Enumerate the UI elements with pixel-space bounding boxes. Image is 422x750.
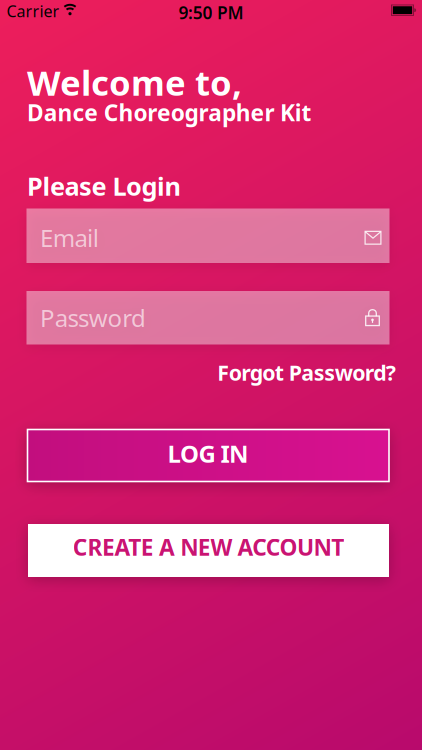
staticText: Forgot Password? (217, 358, 396, 387)
staticText: Email (40, 222, 99, 254)
staticText: LOG IN (167, 438, 249, 469)
button[interactable]: Forgot Password? (217, 358, 396, 387)
button[interactable]: Email (26, 208, 389, 263)
button[interactable]: LOG IN (27, 429, 389, 481)
staticText: Password (40, 302, 146, 334)
staticText: 9:50 PM (178, 1, 244, 24)
button[interactable]: CREATE A NEW ACCOUNT (28, 524, 389, 577)
staticText: CREATE A NEW ACCOUNT (73, 532, 344, 562)
staticText: Welcome to, (27, 59, 242, 105)
staticText: Carrier (6, 0, 59, 22)
button[interactable]: Password (26, 291, 389, 344)
staticText: Dance Choreographer Kit (27, 97, 312, 127)
staticText: Please Login (27, 169, 180, 203)
